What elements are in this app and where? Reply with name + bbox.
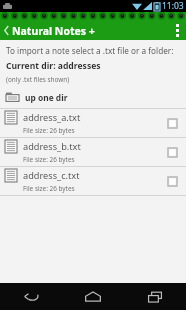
button[interactable]: address_a.txt (0, 109, 186, 137)
staticText: address_c.txt (23, 169, 80, 182)
button[interactable]: Back (0, 283, 62, 310)
button[interactable]: Select address_b.txt (163, 143, 181, 161)
staticText: 11:03 (162, 0, 184, 12)
button[interactable]: address_c.txt (0, 167, 186, 195)
button[interactable]: Home (62, 283, 124, 310)
button[interactable]: address_b.txt (0, 138, 186, 166)
button[interactable]: Select address_c.txt (163, 172, 181, 190)
staticText: Current dir: addresses (6, 60, 101, 72)
staticText: Natural Notes + (12, 24, 168, 38)
staticText: (only .txt files shown) (6, 75, 70, 84)
staticText: File size: 26 bytes (23, 184, 75, 193)
button[interactable]: Recent apps (124, 283, 186, 310)
staticText: up one dir (25, 92, 68, 103)
button[interactable]: More options (168, 21, 186, 40)
button[interactable]: up one dir (0, 90, 186, 104)
staticText: address_b.txt (23, 140, 81, 153)
staticText: File size: 26 bytes (23, 155, 75, 164)
button[interactable]: Navigate up (0, 21, 12, 40)
staticText: File size: 26 bytes (23, 126, 75, 135)
staticText: address_a.txt (23, 111, 81, 124)
button[interactable]: Select address_a.txt (163, 114, 181, 132)
staticText: To import a note select a .txt file or a… (6, 45, 174, 56)
